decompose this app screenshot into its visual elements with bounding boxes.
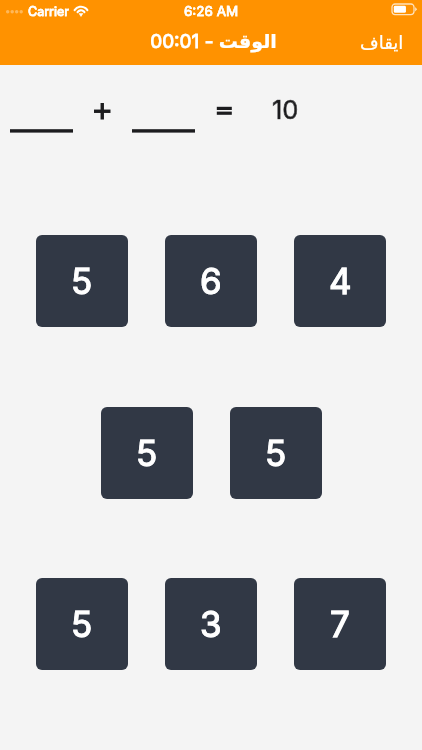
staticText: 5 xyxy=(71,603,93,645)
staticText: 5 xyxy=(71,260,93,302)
staticText: 4 xyxy=(329,260,352,302)
staticText: 3 xyxy=(200,603,222,645)
button[interactable]: 6 xyxy=(165,235,257,327)
other: Battery xyxy=(392,4,418,15)
button[interactable]: ايقاف xyxy=(348,26,422,59)
staticText: 10 xyxy=(272,94,299,125)
button[interactable]: 4 xyxy=(294,235,386,327)
staticText: ايقاف xyxy=(360,32,404,53)
button[interactable]: 5 xyxy=(36,578,128,670)
button[interactable]: 5 xyxy=(36,235,128,327)
button[interactable]: 3 xyxy=(165,578,257,670)
staticText: 7 xyxy=(330,603,350,645)
staticText: Carrier xyxy=(28,4,69,19)
button[interactable]: 5 xyxy=(101,407,193,499)
other: Wi-Fi xyxy=(73,4,89,16)
staticText: 3 xyxy=(200,603,222,645)
staticText: 5 xyxy=(265,432,287,474)
staticText: 5 xyxy=(71,603,93,645)
staticText: 5 xyxy=(71,260,93,302)
staticText: 5 xyxy=(136,432,158,474)
staticText: 10 xyxy=(272,94,299,125)
staticText: 5 xyxy=(136,432,158,474)
staticText: Carrier xyxy=(28,4,69,19)
staticText: 6 xyxy=(200,260,222,302)
staticText: 6:26 AM xyxy=(184,3,239,19)
button[interactable]: 7 xyxy=(294,578,386,670)
staticText: الوقت - 00:01 xyxy=(150,30,277,53)
button[interactable]: 5 xyxy=(230,407,322,499)
staticText: 4 xyxy=(329,260,352,302)
staticText: 5 xyxy=(265,432,287,474)
staticText: 6 xyxy=(200,260,222,302)
staticText: 6:26 AM xyxy=(184,3,239,19)
staticText: 7 xyxy=(330,603,350,645)
other: Signal strength xyxy=(6,10,25,16)
